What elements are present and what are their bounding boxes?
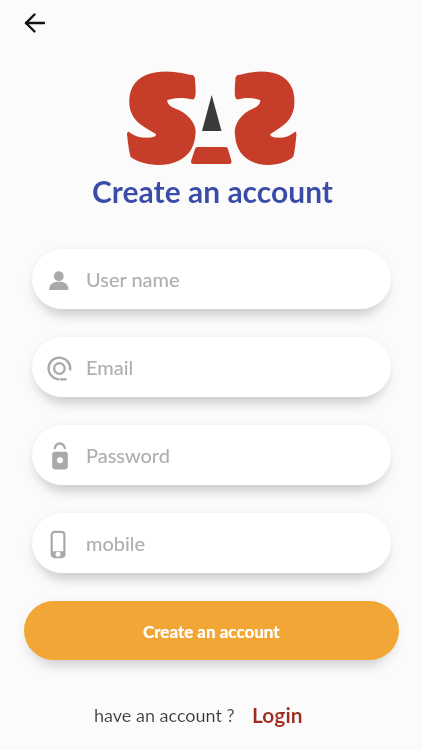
staticText: Create an account	[143, 621, 280, 641]
staticText: Login	[252, 702, 303, 727]
staticText: Email	[86, 355, 134, 379]
staticText: mobile	[86, 531, 146, 555]
staticText: Create an account	[92, 173, 334, 209]
staticText: S	[122, 11, 181, 104]
staticText: User name	[86, 267, 180, 291]
staticText: S	[247, 11, 301, 104]
staticText: have an account ?	[94, 704, 235, 726]
staticText: Password	[86, 443, 170, 467]
